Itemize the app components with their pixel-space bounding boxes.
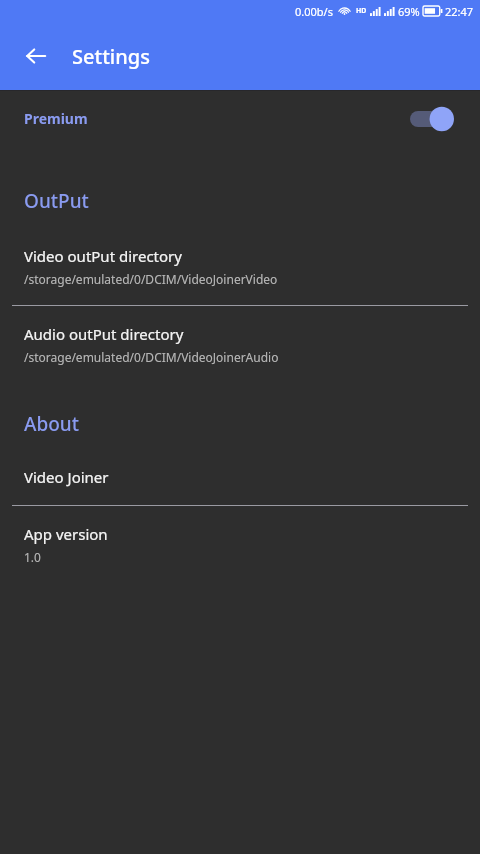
button[interactable]: Video outPut directory: [0, 238, 480, 295]
staticText: 1.0: [24, 549, 41, 565]
staticText: /storage/emulated/0/DCIM/VideoJoinerAudi…: [24, 349, 279, 365]
staticText: Video Joiner: [24, 467, 109, 487]
button[interactable]: Video Joiner: [0, 459, 480, 495]
staticText: 0.00b/s: [295, 4, 333, 19]
button[interactable]: Premium toggle: [410, 106, 456, 132]
staticText: OutPut: [24, 188, 89, 214]
staticText: /storage/emulated/0/DCIM/VideoJoinerVide…: [24, 271, 278, 287]
staticText: Video outPut directory: [24, 246, 182, 266]
staticText: Premium: [24, 109, 88, 128]
staticText: Settings: [72, 43, 150, 70]
button[interactable]: Audio outPut directory: [0, 316, 480, 373]
staticText: 22:47: [445, 4, 474, 19]
staticText: 69%: [398, 4, 420, 19]
button[interactable]: App version: [0, 516, 480, 573]
staticText: Audio outPut directory: [24, 324, 184, 344]
button[interactable]: Back: [14, 34, 58, 78]
staticText: About: [24, 411, 80, 437]
staticText: App version: [24, 524, 108, 544]
button[interactable]: Premium: [0, 91, 480, 146]
staticText: HD: [356, 6, 367, 16]
